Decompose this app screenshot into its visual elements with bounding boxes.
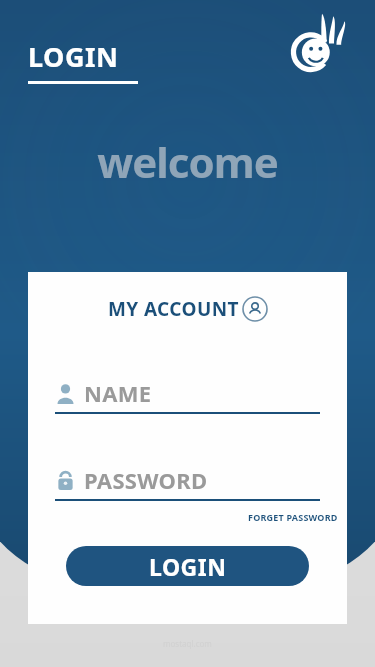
- staticText: PASSWORD: [84, 465, 208, 495]
- staticText: welcome: [97, 133, 278, 190]
- other: App logo: [291, 10, 353, 72]
- button[interactable]: NAME: [55, 378, 320, 414]
- button[interactable]: LOGIN: [66, 546, 309, 586]
- button[interactable]: LOGIN: [28, 38, 138, 84]
- button[interactable]: PASSWORD: [55, 465, 320, 501]
- staticText: LOGIN: [149, 551, 227, 582]
- staticText: NAME: [84, 378, 152, 408]
- button[interactable]: MY ACCOUNT: [108, 296, 268, 322]
- staticText: LOGIN: [28, 38, 119, 75]
- staticText: MY ACCOUNT: [108, 296, 239, 322]
- button[interactable]: FORGET PASSWORD: [246, 509, 340, 525]
